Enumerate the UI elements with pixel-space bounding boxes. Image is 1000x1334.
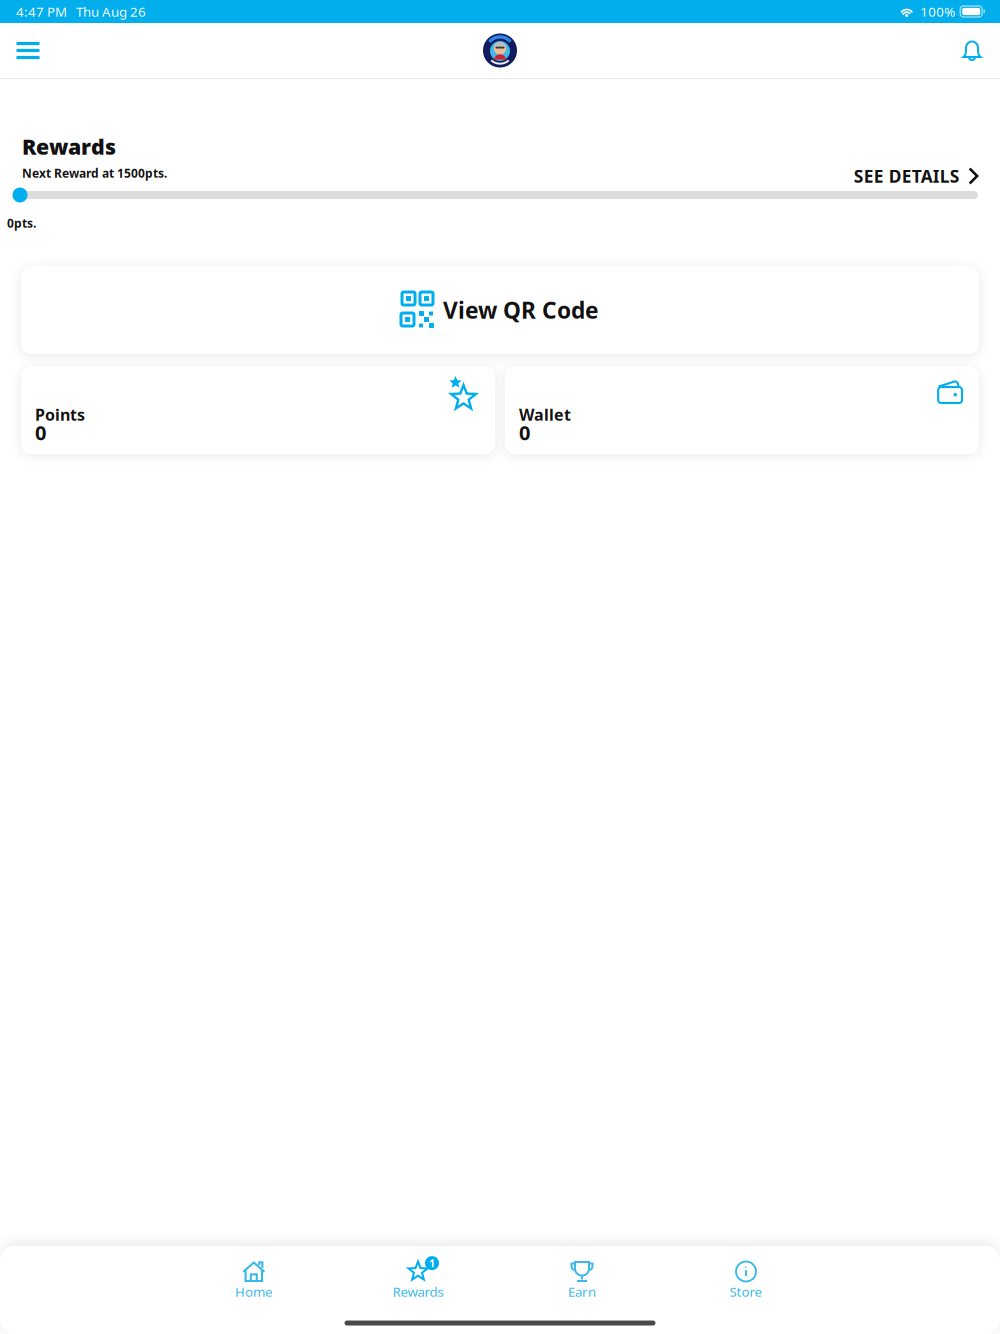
button[interactable]: SEE DETAILS — [854, 158, 1000, 187]
button[interactable]: Store — [691, 1245, 801, 1303]
staticText: View QR Code — [443, 295, 599, 325]
staticText: Thu Aug 26 — [76, 3, 146, 20]
button[interactable]: Home — [199, 1245, 309, 1303]
staticText: 0pts. — [7, 215, 36, 231]
staticText: Points — [35, 404, 85, 425]
staticText: Earn — [568, 1283, 596, 1300]
staticText: 1 — [429, 1256, 435, 1270]
button[interactable]: Earn — [527, 1245, 637, 1303]
staticText: Store — [729, 1283, 762, 1300]
staticText: Home — [235, 1283, 273, 1300]
staticText: 0 — [35, 419, 46, 446]
staticText: Rewards — [22, 132, 116, 161]
staticText: 0 — [519, 419, 530, 446]
staticText: SEE DETAILS — [854, 164, 960, 187]
staticText: Next Reward at 1500pts. — [22, 165, 167, 181]
button[interactable]: Points — [21, 366, 495, 454]
button[interactable]: View QR Code — [0, 266, 1000, 354]
button[interactable]: Menu — [6, 28, 50, 72]
button[interactable]: Wallet — [505, 366, 979, 454]
button[interactable]: Notifications — [950, 28, 994, 72]
button[interactable]: 1 — [363, 1245, 473, 1303]
staticText: 100% — [920, 3, 955, 20]
staticText: Wallet — [519, 404, 571, 425]
staticText: Rewards — [392, 1283, 443, 1300]
staticText: 4:47 PM — [16, 3, 67, 20]
